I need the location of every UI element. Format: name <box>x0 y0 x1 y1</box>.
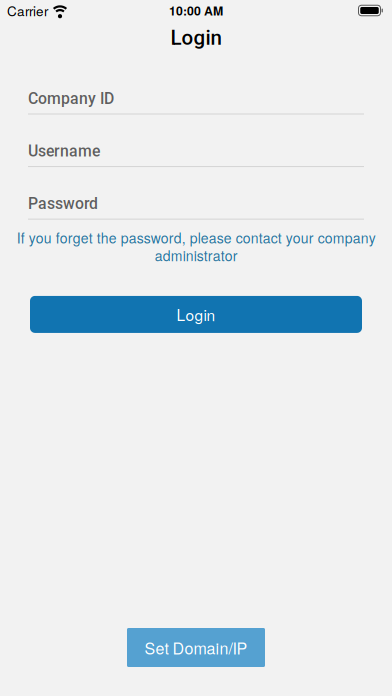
staticText: Password <box>28 195 97 217</box>
staticText: Password <box>28 195 98 213</box>
staticText: Login <box>170 26 221 49</box>
button[interactable]: Set Domain/IP <box>127 628 265 667</box>
staticText: 10:00 AM <box>169 2 223 19</box>
textField[interactable]: Username <box>28 142 364 164</box>
staticText: If you forget the password, please conta… <box>16 229 375 264</box>
textField[interactable]: Password <box>28 195 364 217</box>
button[interactable]: Login <box>30 296 362 333</box>
staticText: Username <box>28 142 101 164</box>
staticText: Company ID <box>28 89 114 108</box>
staticText: Login <box>176 304 215 325</box>
staticText: Company ID <box>28 89 114 112</box>
staticText: Username <box>28 142 100 160</box>
staticText: Carrier <box>7 1 48 20</box>
textField[interactable]: Company ID <box>28 89 364 112</box>
staticText: Set Domain/IP <box>144 636 247 659</box>
